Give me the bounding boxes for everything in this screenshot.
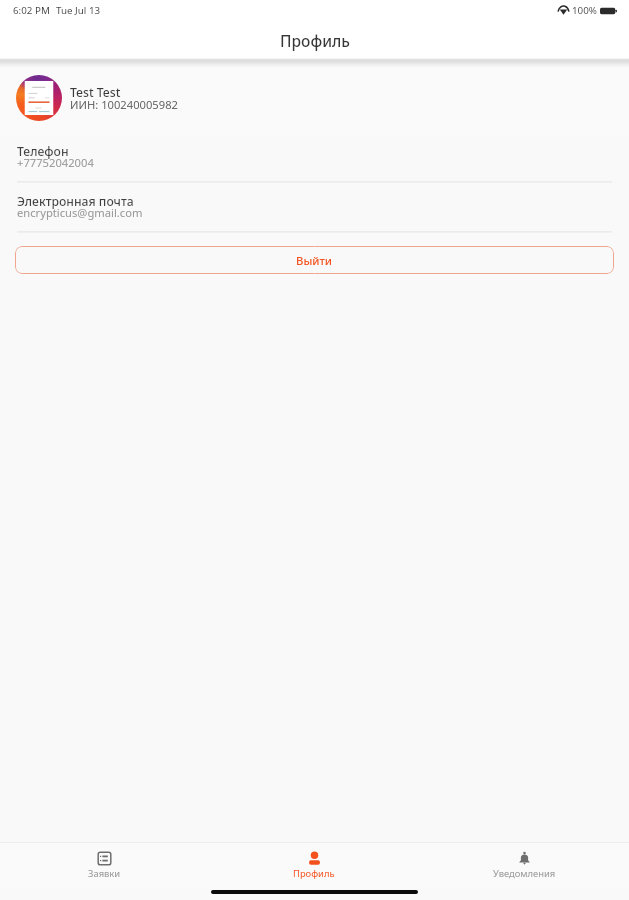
staticText: Tue Jul 13 (56, 4, 101, 17)
other: Wi-Fi connected (558, 6, 569, 15)
staticText: Выйти (296, 253, 333, 268)
staticText: Test Test (70, 84, 121, 101)
staticText: encrypticus@gmail.com (17, 205, 143, 220)
staticText: Электронная почта (17, 193, 134, 210)
button[interactable]: Уведомления (419, 843, 629, 889)
staticText: +77752042004 (17, 155, 94, 170)
button[interactable]: Профиль (209, 843, 419, 889)
other: Profile photo (16, 75, 62, 121)
staticText: 6:02 PM (13, 4, 50, 17)
button[interactable]: Телефон (0, 136, 629, 183)
button[interactable]: Выйти (15, 246, 614, 274)
staticText: 100% (572, 4, 597, 17)
button[interactable]: Profile photo (0, 59, 629, 136)
staticText: Телефон (17, 143, 69, 160)
staticText: Заявки (88, 867, 121, 880)
staticText: Профиль (280, 30, 350, 51)
button[interactable]: Заявки (0, 843, 209, 889)
staticText: Профиль (293, 867, 335, 880)
staticText: Уведомления (493, 867, 556, 880)
staticText: ИИН: 100240005982 (70, 97, 178, 112)
button[interactable]: Электронная почта (0, 183, 629, 233)
other: Battery full (600, 7, 617, 15)
